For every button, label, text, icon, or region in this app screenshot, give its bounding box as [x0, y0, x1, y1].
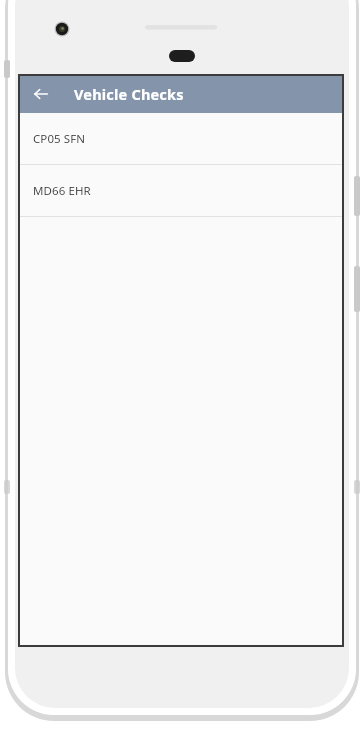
button[interactable]: CP05 SFN: [19, 113, 343, 164]
staticText: MD66 EHR: [33, 183, 91, 199]
staticText: CP05 SFN: [33, 131, 86, 147]
button[interactable]: Back: [25, 78, 57, 110]
staticText: Vehicle Checks: [74, 84, 184, 104]
button[interactable]: MD66 EHR: [19, 165, 343, 216]
